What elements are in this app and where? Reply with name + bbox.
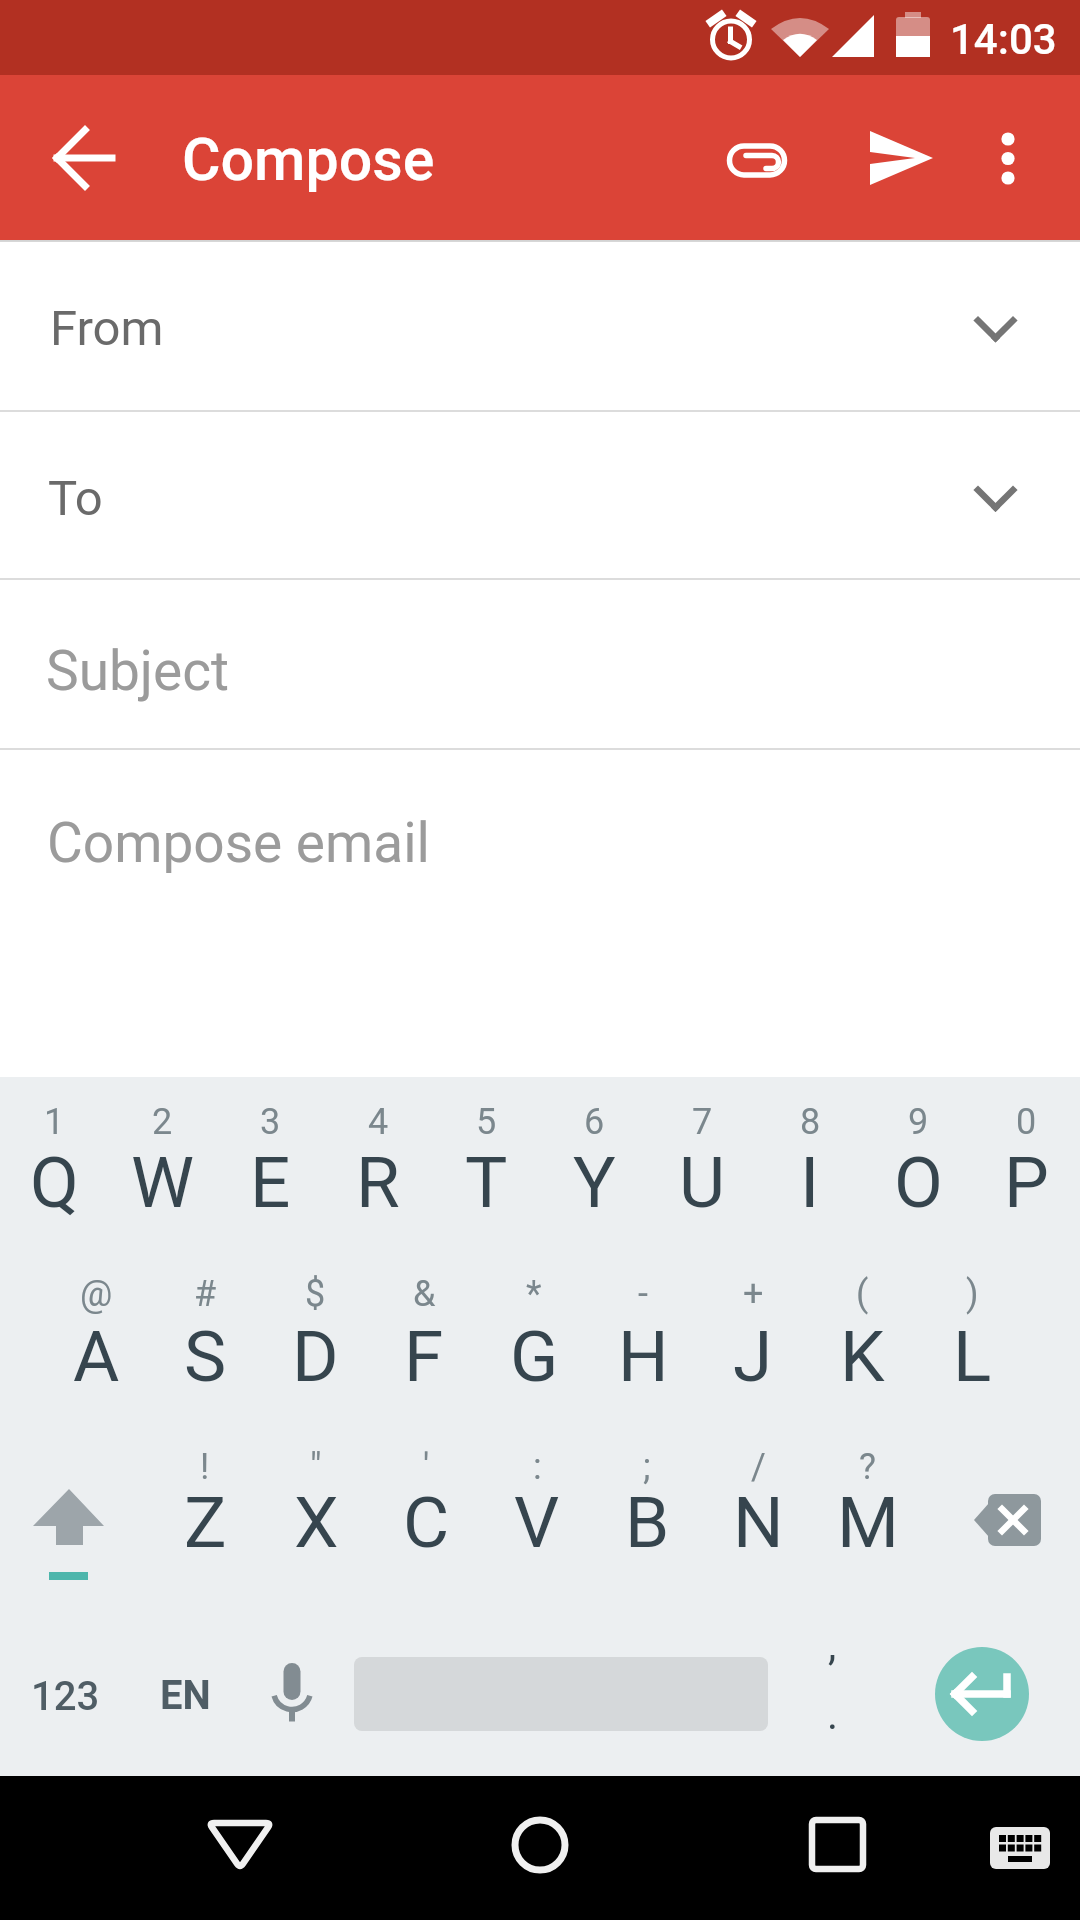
staticText: M xyxy=(837,1481,899,1564)
button[interactable]: 8 xyxy=(756,1077,864,1251)
button[interactable]: & xyxy=(369,1251,479,1425)
button[interactable]: 0 xyxy=(972,1077,1080,1251)
staticText: : xyxy=(533,1446,542,1488)
staticText: Y xyxy=(573,1141,616,1224)
staticText: 4 xyxy=(368,1101,389,1143)
staticText: " xyxy=(310,1446,322,1488)
button[interactable]: Compose email xyxy=(0,750,1080,1077)
staticText: ) xyxy=(966,1273,979,1315)
staticText: * xyxy=(526,1273,542,1315)
staticText: ( xyxy=(856,1273,869,1315)
staticText: $ xyxy=(305,1273,326,1315)
button[interactable] xyxy=(235,1600,350,1776)
staticText: R xyxy=(356,1141,400,1224)
button[interactable]: " xyxy=(261,1425,371,1600)
button[interactable]: 9 xyxy=(864,1077,972,1251)
button[interactable]: ) xyxy=(917,1251,1027,1425)
staticText: Q xyxy=(30,1141,79,1224)
staticText: EN xyxy=(160,1672,211,1719)
staticText: ; xyxy=(643,1446,651,1488)
staticText: J xyxy=(733,1315,773,1398)
staticText: ' xyxy=(423,1446,430,1488)
staticText: O xyxy=(894,1141,943,1224)
staticText: V xyxy=(514,1481,560,1564)
staticText: B xyxy=(625,1481,670,1564)
staticText: 14:03 xyxy=(950,15,1057,64)
button[interactable]: @ xyxy=(41,1251,151,1425)
button[interactable]: 6 xyxy=(540,1077,648,1251)
button[interactable] xyxy=(766,1776,910,1920)
staticText: F xyxy=(404,1315,444,1398)
staticText: H xyxy=(618,1315,669,1398)
staticText: / xyxy=(751,1446,766,1488)
button[interactable] xyxy=(0,1425,150,1600)
button[interactable]: From xyxy=(0,242,1080,410)
button[interactable]: , xyxy=(775,1600,890,1776)
button[interactable]: 4 xyxy=(324,1077,432,1251)
button[interactable] xyxy=(948,1776,1080,1920)
button[interactable]: ? xyxy=(813,1425,923,1600)
staticText: Compose email xyxy=(47,811,430,875)
button[interactable]: EN xyxy=(135,1600,235,1776)
button[interactable]: 2 xyxy=(108,1077,216,1251)
staticText: D xyxy=(292,1315,339,1398)
button[interactable]: ' xyxy=(371,1425,481,1600)
button[interactable]: $ xyxy=(260,1251,370,1425)
button[interactable]: Subject xyxy=(0,580,1080,748)
staticText: 3 xyxy=(260,1101,281,1143)
button[interactable] xyxy=(168,1776,312,1920)
button[interactable] xyxy=(852,110,948,206)
staticText: G xyxy=(510,1315,559,1398)
staticText: - xyxy=(638,1273,648,1315)
staticText: A xyxy=(73,1315,120,1398)
button[interactable]: ; xyxy=(592,1425,702,1600)
staticText: 8 xyxy=(800,1101,821,1143)
button[interactable]: 5 xyxy=(432,1077,540,1251)
staticText: U xyxy=(679,1141,726,1224)
button[interactable] xyxy=(468,1776,612,1920)
staticText: + xyxy=(743,1273,764,1315)
button[interactable]: : xyxy=(482,1425,592,1600)
staticText: Compose xyxy=(182,125,435,194)
button[interactable] xyxy=(935,1647,1029,1741)
staticText: From xyxy=(50,300,164,357)
staticText: S xyxy=(184,1315,227,1398)
button[interactable] xyxy=(709,109,805,205)
button[interactable]: 3 xyxy=(216,1077,324,1251)
staticText: N xyxy=(733,1481,784,1564)
staticText: X xyxy=(294,1481,339,1564)
button[interactable] xyxy=(960,110,1056,206)
button[interactable] xyxy=(37,111,133,207)
staticText: ! xyxy=(200,1446,210,1488)
button[interactable]: ( xyxy=(807,1251,917,1425)
staticText: # xyxy=(194,1273,217,1315)
staticText: T xyxy=(465,1141,508,1224)
staticText: & xyxy=(413,1273,436,1315)
button[interactable]: # xyxy=(150,1251,260,1425)
staticText: 9 xyxy=(908,1101,929,1143)
button[interactable]: To xyxy=(0,412,1080,578)
staticText: P xyxy=(1004,1141,1049,1224)
staticText: 123 xyxy=(31,1673,100,1720)
staticText: L xyxy=(953,1315,992,1398)
button[interactable] xyxy=(940,1425,1080,1600)
staticText: Subject xyxy=(46,639,229,703)
button[interactable]: / xyxy=(703,1425,813,1600)
staticText: 6 xyxy=(584,1101,605,1143)
button[interactable]: 7 xyxy=(648,1077,756,1251)
button[interactable]: - xyxy=(588,1251,698,1425)
staticText: E xyxy=(250,1141,291,1224)
button[interactable]: 1 xyxy=(0,1077,108,1251)
button[interactable]: + xyxy=(698,1251,808,1425)
staticText: To xyxy=(48,470,103,527)
staticText: 5 xyxy=(476,1101,497,1143)
staticText: , xyxy=(828,1621,837,1670)
staticText: I xyxy=(800,1141,820,1224)
staticText: 0 xyxy=(1016,1101,1037,1143)
button[interactable]: 123 xyxy=(0,1600,135,1776)
button[interactable]: * xyxy=(479,1251,589,1425)
button[interactable]: ! xyxy=(150,1425,260,1600)
staticText: Z xyxy=(184,1481,227,1564)
staticText: W xyxy=(131,1141,194,1224)
